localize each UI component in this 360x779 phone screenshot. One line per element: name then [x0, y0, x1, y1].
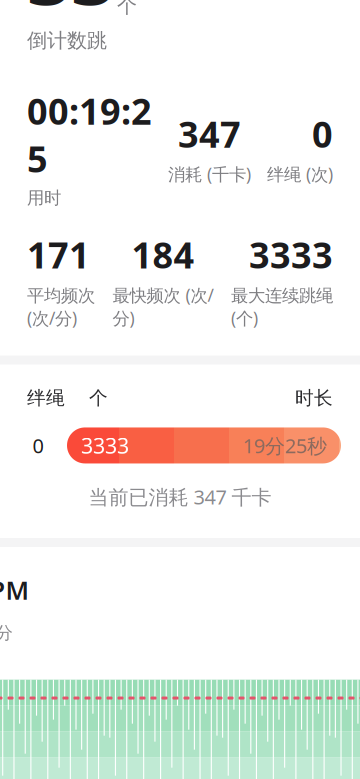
staticText: 消耗 (千卡) [168, 163, 251, 186]
staticText: 3333 [249, 231, 333, 278]
staticText: 平均频次 (次/分) [27, 283, 95, 329]
staticText: 0 [312, 110, 333, 158]
staticText: 倒计数跳 [27, 28, 107, 53]
staticText: 个 [117, 0, 137, 18]
staticText: 3333 [81, 431, 129, 460]
staticText: 171 [27, 231, 90, 278]
staticText: 当前已消耗 347 千卡 [88, 483, 271, 510]
staticText: 00:19:25 [27, 87, 152, 182]
staticText: 时长 [295, 386, 333, 409]
staticText: 最大连续跳绳 (个) [231, 283, 333, 329]
staticText: BPM [0, 573, 29, 607]
staticText: 绊绳 [27, 386, 65, 409]
staticText: 次/分 [0, 621, 12, 644]
staticText: 184 [131, 231, 194, 278]
staticText: 绊绳 (次) [267, 163, 333, 186]
staticText: 个 [89, 386, 108, 409]
staticText: 3333 [27, 0, 115, 26]
staticText: 最快频次 (次/分) [112, 283, 213, 329]
staticText: 347 [178, 110, 241, 158]
staticText: 19分25秒 [243, 432, 327, 459]
staticText: 0 [32, 432, 43, 459]
staticText: 用时 [27, 187, 61, 209]
